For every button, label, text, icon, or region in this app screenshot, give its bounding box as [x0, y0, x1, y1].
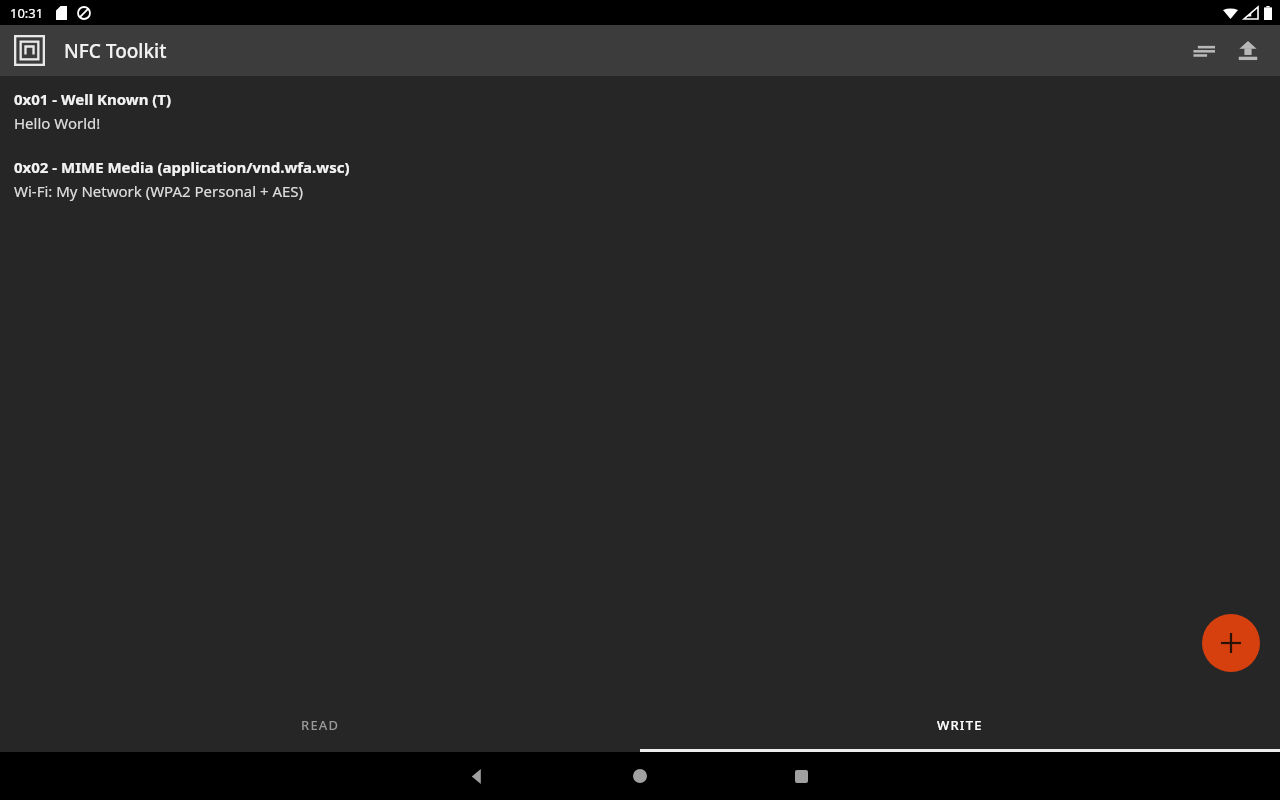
button[interactable]: Sort	[1182, 29, 1226, 73]
staticText: WRITE	[937, 716, 983, 734]
staticText: 10:31	[10, 4, 44, 22]
button[interactable]: Add record	[1202, 614, 1260, 672]
button[interactable]: Home	[616, 752, 664, 800]
staticText: Hello World!	[14, 113, 101, 133]
button[interactable]: Upload	[1226, 29, 1270, 73]
staticText: READ	[301, 716, 340, 734]
staticText: 0x02 - MIME Media (application/vnd.wfa.w…	[14, 157, 350, 177]
button[interactable]: 0x02 - MIME Media (application/vnd.wfa.w…	[14, 157, 1280, 201]
button[interactable]: Recent apps	[777, 752, 825, 800]
staticText: 0x01 - Well Known (T)	[14, 89, 172, 109]
button[interactable]: WRITE	[640, 704, 1280, 752]
staticText: NFC Toolkit	[64, 38, 167, 64]
button[interactable]: 0x01 - Well Known (T)	[14, 89, 1280, 133]
button[interactable]: Back	[453, 752, 501, 800]
staticText: Wi-Fi: My Network (WPA2 Personal + AES)	[14, 181, 304, 201]
button[interactable]: READ	[0, 704, 640, 752]
